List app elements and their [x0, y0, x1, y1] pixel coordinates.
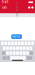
- button[interactable]: Back: [1, 6, 6, 9]
- staticText: Today 10:30: [16, 1, 19, 30]
- staticText: Back: [1, 6, 6, 9]
- button[interactable]: Call: [28, 6, 30, 9]
- staticText: 9:41: [2, 0, 9, 4]
- button[interactable]: Info: [31, 6, 33, 9]
- staticText: Hello: [13, 35, 21, 38]
